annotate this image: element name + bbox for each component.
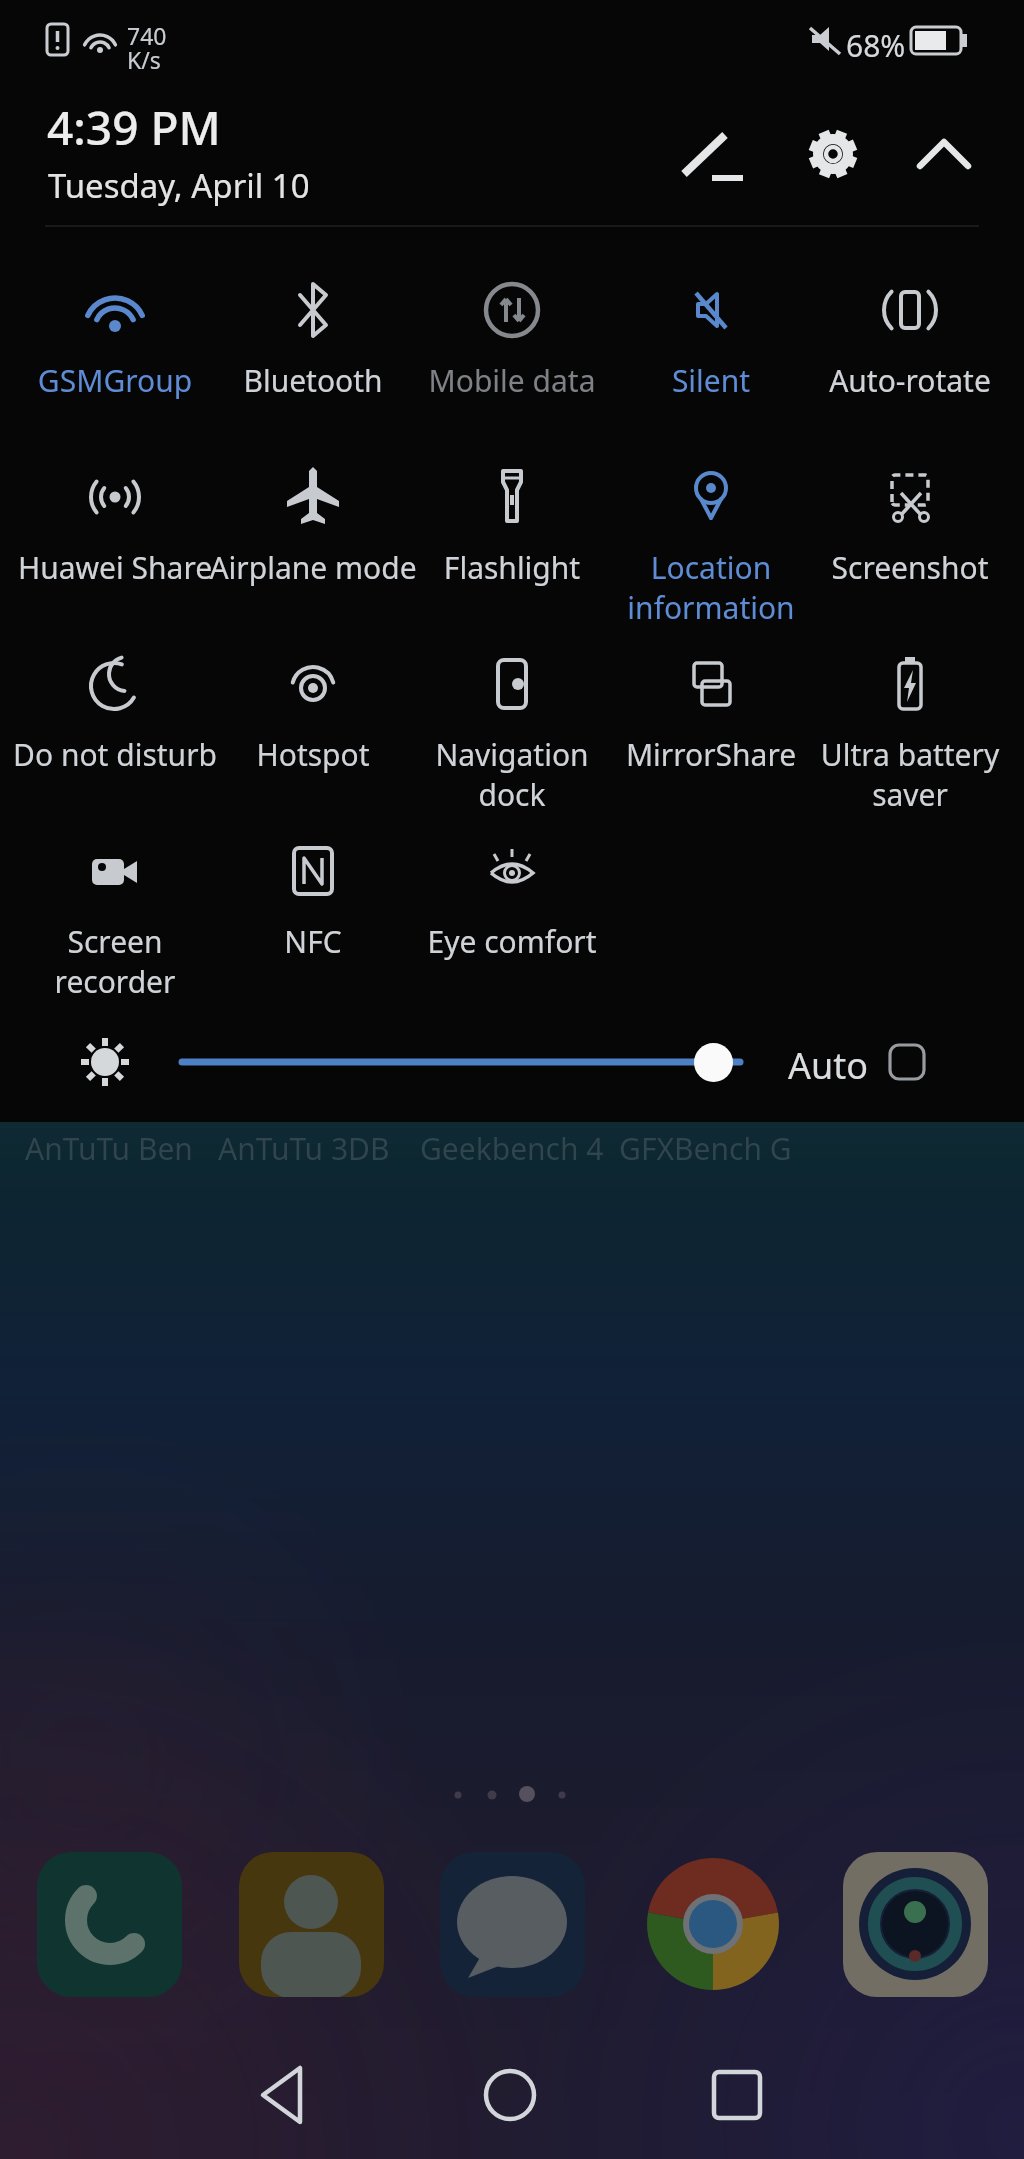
button[interactable]: Screen recorder [5,831,225,1002]
staticText: Ultra battery saver [800,734,1020,815]
staticText: 740 [127,20,167,51]
staticText: Auto-rotate [800,360,1020,401]
staticText: AnTuTu 3DB [218,1128,390,1169]
button[interactable] [641,1852,786,1997]
staticText: Mobile data [402,360,622,401]
staticText: Flashlight [402,547,622,588]
button[interactable] [908,118,980,190]
staticText: MirrorShare [601,734,821,775]
staticText: AnTuTu Ben [25,1128,193,1169]
staticText: Hotspot [203,734,423,775]
button[interactable]: Eye comfort [402,831,622,962]
button[interactable] [440,1852,585,1997]
button[interactable]: Location information [601,457,821,628]
button[interactable]: Ultra battery saver [800,644,1020,815]
button[interactable]: Silent [601,270,821,401]
button[interactable]: Navigation dock [402,644,622,815]
staticText: Airplane mode [203,547,423,588]
staticText: Screenshot [800,547,1020,588]
button[interactable] [475,2060,545,2130]
button[interactable]: Hotspot [203,644,423,775]
staticText: GSMGroup [5,360,225,401]
staticText: K/s [127,44,161,75]
button[interactable]: MirrorShare [601,644,821,775]
button[interactable] [797,118,869,190]
button[interactable] [888,1043,926,1081]
button[interactable]: Screenshot [800,457,1020,588]
staticText: Geekbench 4 GFXBench G [420,1128,792,1169]
button[interactable] [248,2060,318,2130]
button[interactable]: Airplane mode [203,457,423,588]
button[interactable]: Bluetooth [203,270,423,401]
staticText: NFC [203,921,423,962]
button[interactable]: Auto-rotate [800,270,1020,401]
button[interactable]: GSMGroup [5,270,225,401]
button[interactable] [677,118,749,190]
button[interactable]: NFC [203,831,423,962]
staticText: Silent [601,360,821,401]
button[interactable] [843,1852,988,1997]
button[interactable] [702,2060,772,2130]
staticText: Eye comfort [402,921,622,962]
staticText: 68% [846,25,906,66]
button[interactable]: Mobile data [402,270,622,401]
staticText: Tuesday, April 10 [48,163,310,208]
staticText: 4:39 PM [47,96,221,159]
staticText: Auto [788,1041,869,1090]
staticText: Screen recorder [5,921,225,1002]
button[interactable] [239,1852,384,1997]
button[interactable]: Do not disturb [5,644,225,775]
staticText: Location information [601,547,821,628]
button[interactable] [694,1043,733,1082]
button[interactable] [37,1852,182,1997]
button[interactable]: Huawei Share [5,457,225,588]
button[interactable]: Flashlight [402,457,622,588]
staticText: Huawei Share [5,547,225,588]
staticText: Navigation dock [402,734,622,815]
staticText: Bluetooth [203,360,423,401]
staticText: Do not disturb [5,734,225,775]
